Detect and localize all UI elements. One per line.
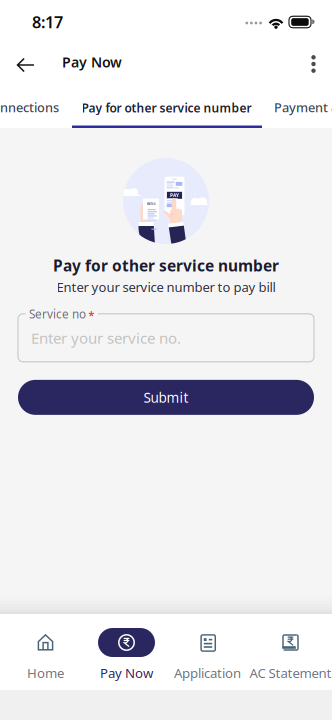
button[interactable]: Pay Now — [85, 614, 168, 690]
button[interactable]: Application — [166, 614, 249, 690]
staticText: * — [88, 308, 94, 322]
staticText: Pay Now — [100, 664, 153, 682]
staticText: Enter your service number to pay bill — [56, 278, 275, 296]
staticText: Pay for other service number — [53, 255, 279, 276]
button[interactable]: More options — [295, 40, 332, 84]
button[interactable]: Back — [0, 40, 48, 84]
staticText: Enter your service no. — [31, 328, 181, 348]
staticText: Service no — [29, 306, 86, 322]
button[interactable]: Payment & — [274, 84, 332, 128]
staticText: Application — [174, 664, 241, 682]
button[interactable]: Submit — [18, 380, 314, 415]
staticText: PAY — [170, 192, 179, 198]
staticText: Pay for other service number — [81, 100, 251, 116]
button[interactable]: AC Statement — [249, 614, 332, 690]
staticText: Home — [27, 664, 64, 682]
staticText: AC Statement — [249, 664, 331, 682]
staticText: BILL — [147, 201, 156, 206]
button[interactable]: onnections — [0, 84, 59, 128]
staticText: onnections — [0, 99, 59, 116]
button[interactable]: Pay for other service number — [81, 84, 251, 128]
button[interactable]: Home — [4, 614, 87, 690]
staticText: Pay Now — [62, 52, 122, 72]
staticText: Payment & — [274, 99, 332, 116]
staticText: Submit — [143, 388, 188, 407]
staticText: 8:17 — [32, 11, 63, 33]
